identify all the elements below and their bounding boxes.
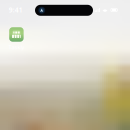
button[interactable]: Taskly xyxy=(8,27,24,51)
staticText: 9:41 xyxy=(9,6,23,14)
